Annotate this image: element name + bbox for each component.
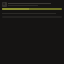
other: Album art <box>2 2 7 7</box>
button[interactable]: Album art <box>2 2 62 7</box>
button[interactable]: Progress <box>2 8 62 10</box>
